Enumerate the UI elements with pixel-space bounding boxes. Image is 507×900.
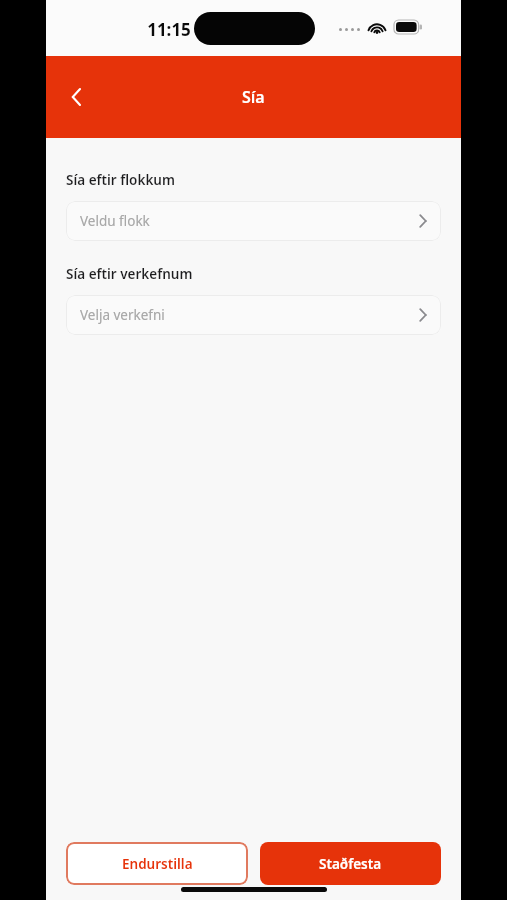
button[interactable]: Velja verkefni bbox=[66, 295, 441, 335]
staticText: 11:15 bbox=[145, 18, 193, 41]
staticText: Velja verkefni bbox=[80, 306, 165, 324]
staticText: Sía bbox=[242, 86, 265, 108]
button[interactable]: Endurstilla bbox=[66, 842, 248, 885]
button[interactable]: Staðfesta bbox=[260, 842, 441, 885]
staticText: Staðfesta bbox=[319, 855, 382, 873]
button[interactable]: Veldu flokk bbox=[66, 201, 441, 241]
staticText: Sía eftir verkefnum bbox=[66, 265, 193, 283]
button[interactable]: Back bbox=[54, 75, 98, 119]
staticText: Endurstilla bbox=[122, 855, 193, 873]
staticText: Veldu flokk bbox=[80, 212, 150, 230]
staticText: Sía eftir flokkum bbox=[66, 171, 175, 189]
